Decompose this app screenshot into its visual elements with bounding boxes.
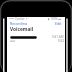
staticText: Recording [10,21,28,25]
staticText: Edit [55,21,62,25]
staticText: Voicemail [10,26,34,33]
staticText: 9:41 AM [52,35,64,39]
staticText: 0:32 [58,39,64,43]
button[interactable]: 9:41 AM [7,34,65,42]
button[interactable]: Edit [55,21,62,25]
staticText: ▮ 100% ▬ [48,17,62,21]
staticText: ••••• Carrier ？ [9,17,29,21]
button[interactable]: Recording [10,21,28,25]
